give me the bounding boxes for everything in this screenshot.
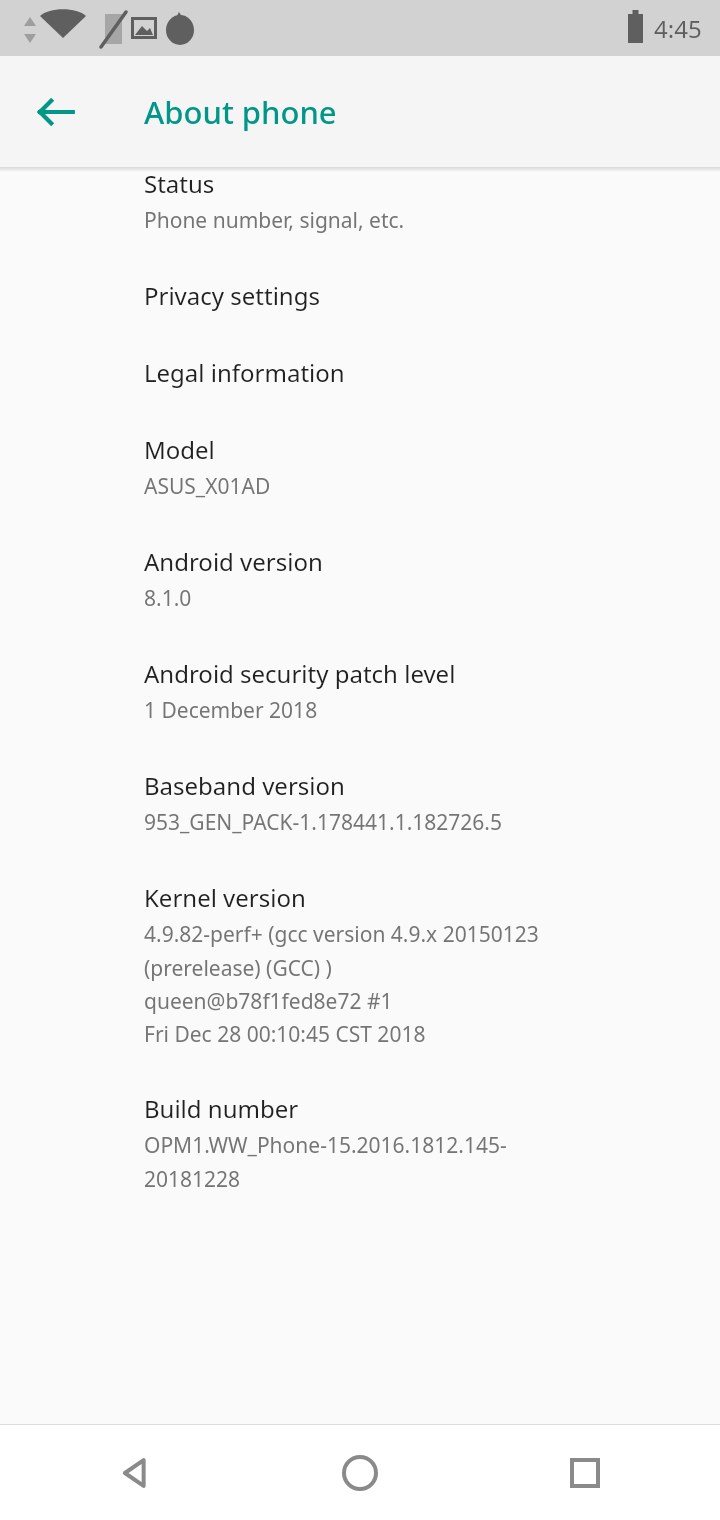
button[interactable]: Model — [0, 411, 720, 523]
staticText: Phone number, signal, etc. — [144, 206, 405, 235]
staticText: Android security patch level — [144, 657, 456, 690]
staticText: 1 December 2018 — [144, 696, 318, 725]
staticText: ASUS_X01AD — [144, 472, 271, 501]
staticText: Build number — [144, 1092, 299, 1125]
staticText: Status — [144, 167, 215, 200]
button[interactable]: Privacy settings — [0, 257, 720, 334]
staticText: Legal information — [144, 356, 345, 389]
button[interactable]: Android security patch level — [0, 635, 720, 747]
button[interactable]: Baseband version — [0, 747, 720, 859]
button[interactable]: Home — [270, 1425, 450, 1520]
staticText: Android version — [144, 545, 323, 578]
staticText: Baseband version — [144, 769, 345, 802]
staticText: Kernel version — [144, 881, 306, 914]
staticText: 4.9.82-perf+ (gcc version 4.9.x 20150123… — [144, 920, 539, 1048]
button[interactable]: Back — [45, 1425, 225, 1520]
button[interactable]: Kernel version — [0, 859, 720, 1070]
staticText: Privacy settings — [144, 279, 320, 312]
button[interactable]: Status — [0, 167, 720, 257]
staticText: OPM1.WW_Phone-15.2016.1812.145- 20181228 — [144, 1131, 507, 1193]
button[interactable]: Legal information — [0, 334, 720, 411]
button[interactable]: Back — [24, 80, 88, 144]
staticText: 4:45 — [654, 12, 702, 45]
staticText: Model — [144, 433, 215, 466]
button[interactable]: Recent apps — [495, 1425, 675, 1520]
button[interactable]: Android version — [0, 523, 720, 635]
staticText: About phone — [144, 91, 337, 133]
staticText: 8.1.0 — [144, 584, 192, 613]
button[interactable]: Build number — [0, 1070, 720, 1215]
staticText: 953_GEN_PACK-1.178441.1.182726.5 — [144, 808, 502, 837]
